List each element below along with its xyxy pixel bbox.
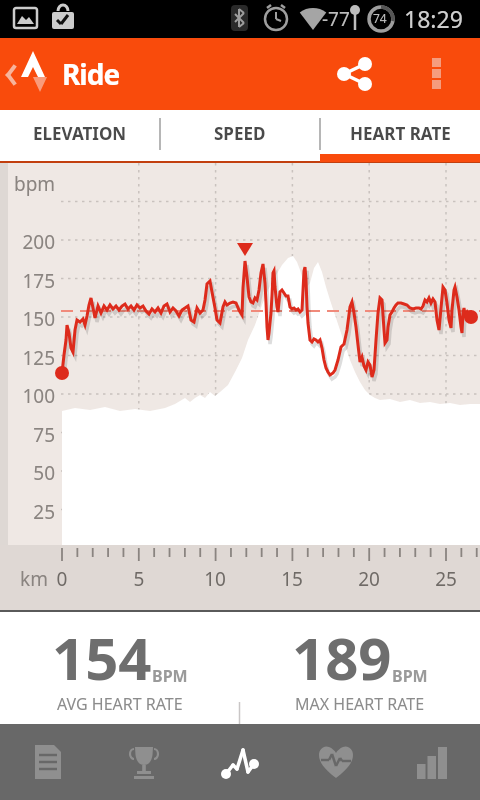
- staticText: 10: [195, 566, 235, 592]
- staticText: 18:29: [404, 3, 463, 34]
- button[interactable]: [0, 724, 96, 800]
- button[interactable]: [384, 724, 480, 800]
- staticText: 5: [119, 566, 159, 592]
- staticText: 189: [292, 618, 392, 697]
- staticText: 25: [8, 499, 55, 525]
- staticText: ELEVATION: [33, 122, 127, 145]
- staticText: Ride: [62, 55, 120, 93]
- button[interactable]: HEART RATE: [320, 110, 480, 163]
- staticText: bpm: [14, 171, 56, 197]
- staticText: HEART RATE: [350, 122, 451, 145]
- staticText: AVG HEART RATE: [57, 693, 183, 715]
- staticText: 150: [8, 306, 55, 332]
- button[interactable]: Ride: [0, 38, 120, 110]
- staticText: 25: [426, 566, 466, 592]
- staticText: BPM: [392, 665, 428, 687]
- button[interactable]: [96, 724, 192, 800]
- button[interactable]: 189: [240, 612, 480, 724]
- button[interactable]: 154: [0, 612, 240, 724]
- staticText: 175: [8, 268, 55, 294]
- staticText: 74: [373, 10, 387, 26]
- staticText: km: [20, 566, 48, 592]
- staticText: BPM: [152, 665, 188, 687]
- staticText: SPEED: [214, 122, 266, 145]
- staticText: 15: [272, 566, 312, 592]
- staticText: 200: [8, 229, 55, 255]
- staticText: 100: [8, 383, 55, 409]
- staticText: 50: [8, 460, 55, 486]
- staticText: MAX HEART RATE: [295, 693, 425, 715]
- staticText: -77: [322, 6, 350, 32]
- button[interactable]: [192, 724, 288, 800]
- staticText: 154: [52, 618, 152, 697]
- staticText: 0: [42, 566, 82, 592]
- button[interactable]: [414, 58, 454, 94]
- staticText: 125: [8, 345, 55, 371]
- staticText: 75: [8, 422, 55, 448]
- button[interactable]: [332, 46, 380, 102]
- staticText: 20: [349, 566, 389, 592]
- button[interactable]: ELEVATION: [0, 110, 160, 163]
- button[interactable]: [288, 724, 384, 800]
- button[interactable]: SPEED: [160, 110, 320, 163]
